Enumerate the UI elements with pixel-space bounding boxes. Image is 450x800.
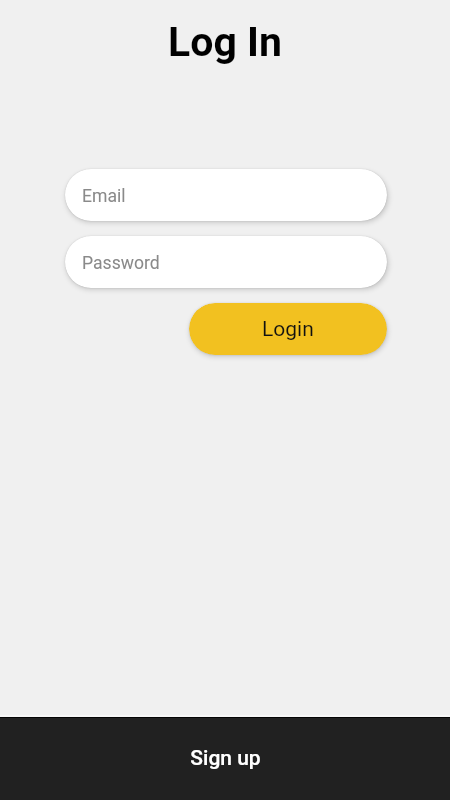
staticText: Sign up bbox=[190, 746, 261, 771]
button[interactable]: Password bbox=[65, 236, 387, 288]
button[interactable]: Login bbox=[189, 303, 387, 355]
staticText: Login bbox=[262, 317, 314, 342]
button[interactable]: Email bbox=[65, 169, 387, 221]
staticText: Password bbox=[82, 253, 160, 274]
staticText: Email bbox=[82, 186, 126, 207]
button[interactable]: Sign up bbox=[0, 717, 450, 800]
staticText: Log In bbox=[168, 18, 282, 66]
